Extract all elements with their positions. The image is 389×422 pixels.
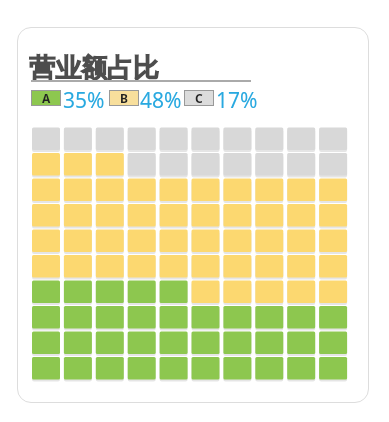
staticText: C xyxy=(195,90,203,106)
staticText: 35% xyxy=(63,86,105,115)
staticText: 17% xyxy=(216,86,258,115)
staticText: B xyxy=(120,90,128,106)
staticText: 48% xyxy=(140,86,182,115)
button[interactable]: B xyxy=(109,90,139,106)
staticText: A xyxy=(42,90,51,106)
button[interactable]: A xyxy=(31,90,61,106)
button[interactable]: C xyxy=(184,90,214,106)
button[interactable] xyxy=(17,27,369,403)
staticText: 营业额占比 xyxy=(29,52,159,85)
